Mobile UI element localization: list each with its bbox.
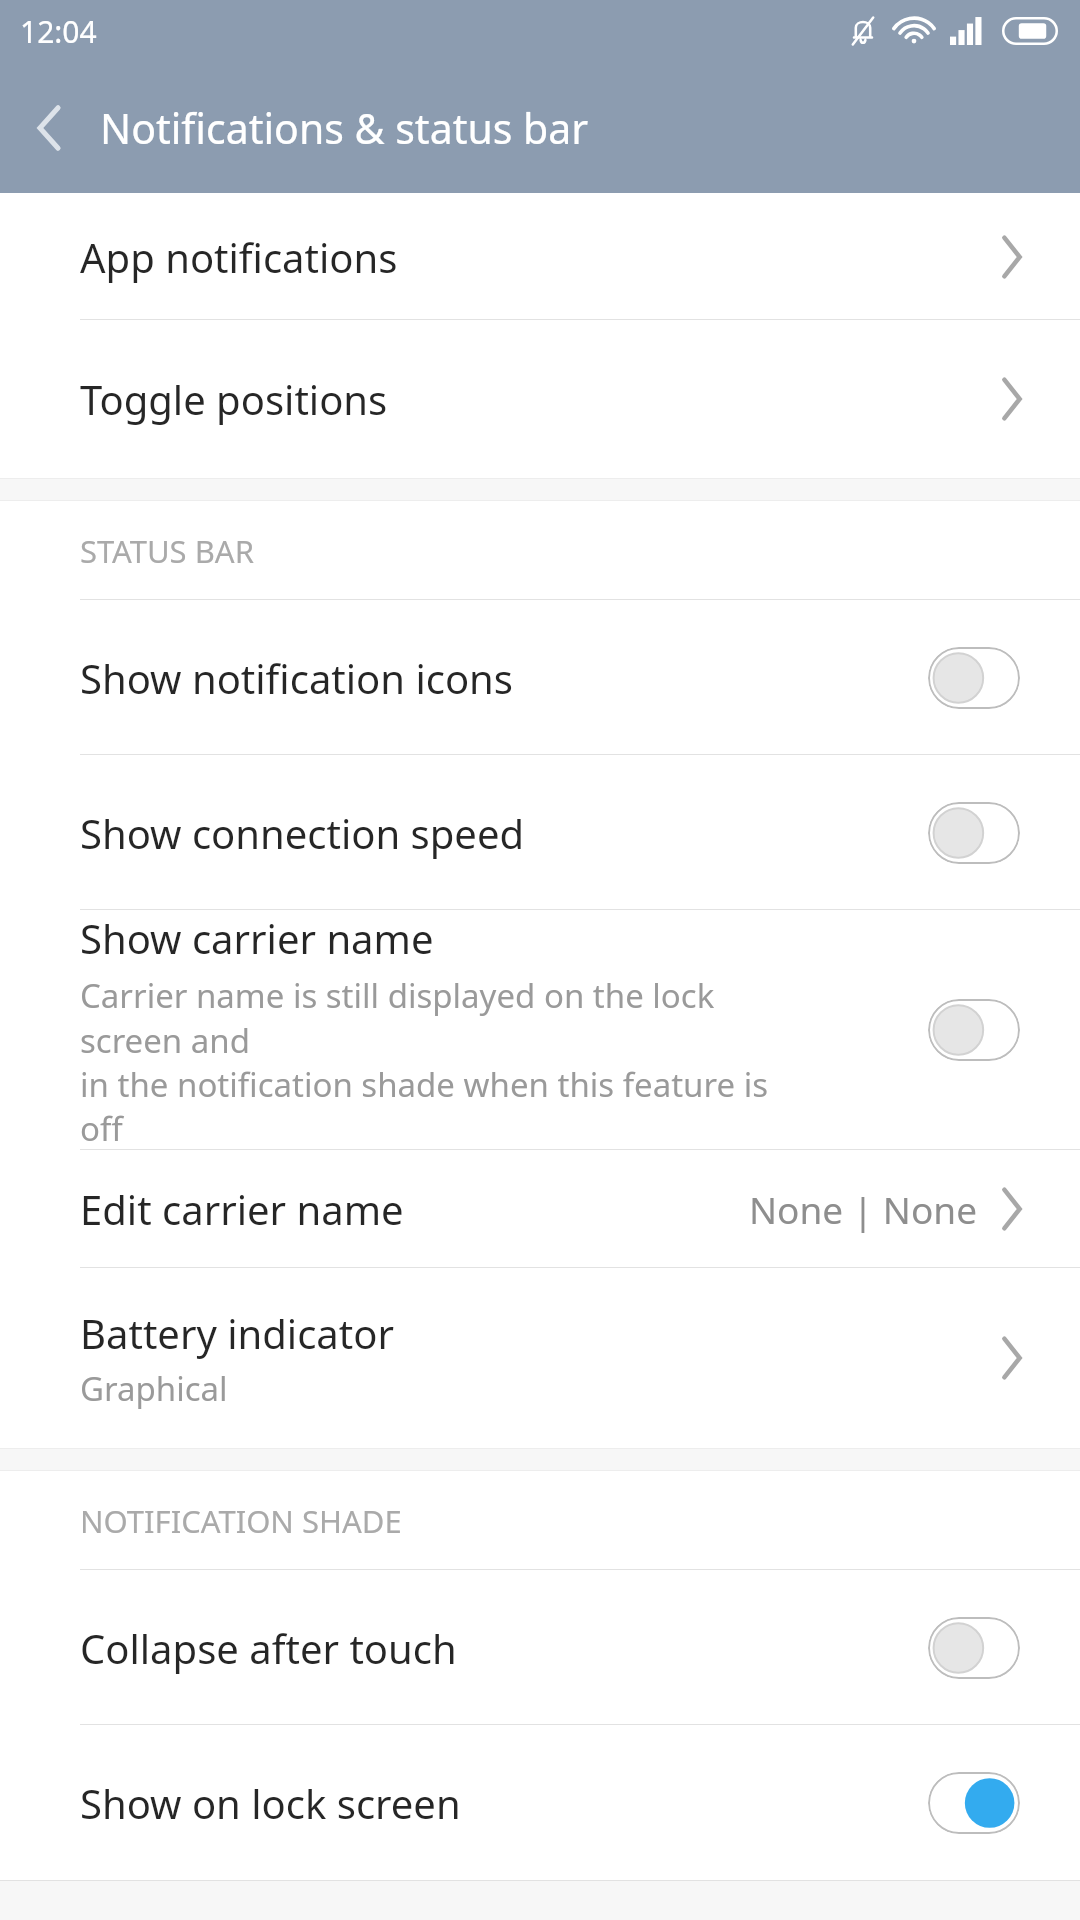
- button[interactable]: Battery indicator: [0, 1268, 1080, 1448]
- button[interactable]: Toggle positions: [0, 320, 1080, 478]
- staticText: 12:04: [20, 11, 97, 52]
- staticText: Toggle positions: [80, 372, 388, 426]
- button[interactable]: Show notification icons: [0, 600, 1080, 755]
- staticText: Graphical: [80, 1366, 228, 1411]
- staticText: Show on lock screen: [80, 1776, 461, 1830]
- staticText: Show carrier name: [80, 911, 434, 965]
- button[interactable]: Edit carrier name: [0, 1150, 1080, 1268]
- staticText: None | None: [749, 1184, 978, 1234]
- staticText: App notifications: [80, 230, 398, 284]
- staticText: Show connection speed: [80, 806, 525, 860]
- button[interactable]: App notifications: [0, 193, 1080, 320]
- staticText: Battery indicator: [80, 1306, 394, 1360]
- button[interactable]: Show connection speed: [0, 755, 1080, 910]
- staticText: Edit carrier name: [80, 1182, 404, 1236]
- button[interactable]: Show on lock screen: [0, 1725, 1080, 1880]
- button[interactable]: Collapse after touch: [0, 1570, 1080, 1725]
- button[interactable]: Show carrier name: [0, 910, 1080, 1150]
- staticText: Show notification icons: [80, 651, 513, 705]
- staticText: Carrier name is still displayed on the l…: [80, 973, 780, 1150]
- staticText: Collapse after touch: [80, 1621, 457, 1675]
- staticText: NOTIFICATION SHADE: [80, 1500, 402, 1542]
- staticText: STATUS BAR: [80, 530, 254, 572]
- button[interactable]: Back: [14, 93, 84, 163]
- staticText: Notifications & status bar: [100, 100, 589, 156]
